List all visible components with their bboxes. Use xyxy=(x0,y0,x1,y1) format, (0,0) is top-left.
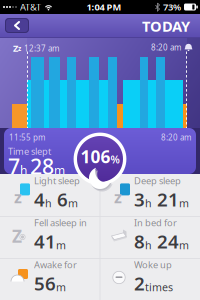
staticText: Deep sleep xyxy=(134,174,181,187)
staticText: Z xyxy=(12,224,22,247)
staticText: m xyxy=(56,280,66,294)
staticText: h xyxy=(45,196,52,210)
staticText: Fell asleep in xyxy=(34,216,87,229)
staticText: 1:04 PM xyxy=(86,1,121,13)
staticText: times xyxy=(145,280,173,294)
staticText: m xyxy=(68,196,78,210)
staticText: z xyxy=(114,186,122,208)
staticText: z xyxy=(18,44,21,53)
button[interactable]: Awake for xyxy=(0,258,100,300)
button[interactable]: Z xyxy=(0,216,100,258)
button[interactable]: Back xyxy=(5,18,29,33)
staticText: Z xyxy=(13,42,18,54)
staticText: 6 xyxy=(52,187,68,212)
staticText: 7 xyxy=(8,152,20,180)
staticText: 12:37 am xyxy=(24,43,59,54)
staticText: 8 xyxy=(134,229,145,254)
staticText: Awake for xyxy=(34,258,77,271)
staticText: m xyxy=(179,238,189,252)
staticText: TODAY xyxy=(142,16,190,36)
staticText: 73% xyxy=(163,1,181,13)
staticText: 11:55 pm xyxy=(9,132,45,143)
staticText: 106 xyxy=(80,145,110,168)
staticText: h xyxy=(145,196,152,210)
staticText: Woke up xyxy=(134,258,172,271)
staticText: 56 xyxy=(34,271,56,296)
staticText: Light sleep xyxy=(34,174,80,187)
staticText: h xyxy=(145,238,152,252)
staticText: 21 xyxy=(152,187,179,212)
button[interactable]: z xyxy=(100,174,200,216)
staticText: 8:20 am xyxy=(161,132,191,143)
staticText: m xyxy=(56,238,66,252)
button[interactable]: z xyxy=(0,174,100,216)
staticText: m xyxy=(54,162,65,178)
staticText: 41 xyxy=(34,229,56,254)
button[interactable]: Woke up xyxy=(100,258,200,300)
staticText: 4 xyxy=(34,187,45,212)
staticText: 28 xyxy=(30,152,54,180)
staticText: AT&T xyxy=(20,1,41,13)
staticText: 8:20 am xyxy=(151,42,181,53)
staticText: h xyxy=(20,162,30,178)
staticText: 3 xyxy=(134,187,145,212)
staticText: m xyxy=(179,196,189,210)
staticText: 24 xyxy=(152,229,179,254)
staticText: z xyxy=(14,186,22,208)
button[interactable]: In bed for xyxy=(100,216,200,258)
staticText: In bed for xyxy=(134,216,177,229)
staticText: % xyxy=(110,152,119,166)
staticText: 2 xyxy=(134,271,145,296)
staticText: Time slept xyxy=(8,145,51,157)
